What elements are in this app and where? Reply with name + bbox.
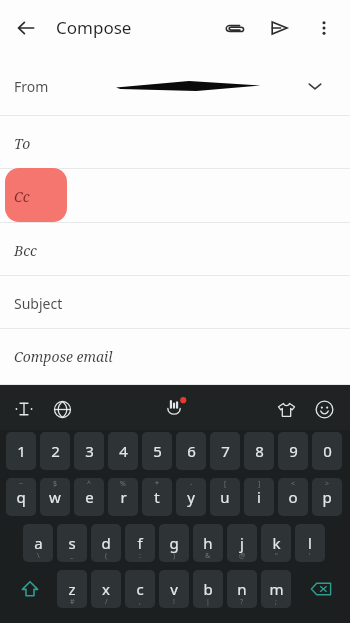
button[interactable]: Compose email (0, 328, 350, 382)
staticText: / (105, 597, 108, 607)
staticText: f (137, 533, 143, 553)
staticText: 4 (119, 441, 128, 461)
staticText: q (16, 487, 26, 507)
button[interactable]: r (108, 478, 138, 516)
staticText: d (101, 533, 111, 553)
button[interactable]: Attach file (218, 12, 250, 44)
button[interactable]: e (74, 478, 104, 516)
button[interactable]: Send (263, 12, 295, 44)
staticText: " (275, 551, 278, 561)
button[interactable]: Voice input (160, 395, 188, 423)
staticText: _ (70, 551, 74, 561)
button[interactable]: t (142, 478, 172, 516)
button[interactable]: q (6, 478, 36, 516)
staticText: 1 (17, 441, 26, 461)
staticText: Bcc (14, 241, 37, 260)
staticText: ) (173, 551, 176, 561)
button[interactable]: c (125, 570, 155, 608)
staticText: x (102, 579, 110, 599)
button[interactable]: Back (10, 12, 42, 44)
button[interactable]: x (91, 570, 121, 608)
staticText: r (120, 487, 127, 507)
staticText: ~ (19, 479, 24, 489)
button[interactable]: u (210, 478, 240, 516)
staticText: [ (224, 479, 227, 489)
staticText: h (203, 533, 213, 553)
button[interactable]: p (312, 478, 342, 516)
staticText: # (70, 597, 75, 607)
staticText: j (240, 533, 244, 553)
button[interactable]: i (244, 478, 274, 516)
button[interactable]: b (193, 570, 223, 608)
button[interactable]: From (0, 55, 350, 115)
staticText: % (120, 479, 126, 489)
staticText: Cc (14, 187, 30, 206)
staticText: ? (240, 597, 244, 607)
staticText: > (325, 479, 330, 489)
button[interactable]: Stickers (272, 395, 300, 423)
staticText: a (34, 533, 43, 553)
staticText: & (205, 551, 211, 561)
staticText: 8 (255, 441, 264, 461)
button[interactable]: To (0, 115, 350, 169)
button[interactable]: w (40, 478, 70, 516)
staticText: y (187, 487, 195, 507)
button[interactable]: f (125, 524, 155, 562)
button[interactable]: d (91, 524, 121, 562)
button[interactable]: Cc (0, 168, 350, 222)
button[interactable]: 7 (210, 432, 240, 470)
staticText: * (155, 479, 159, 489)
button[interactable]: Subject (0, 275, 350, 329)
button[interactable]: Backspace (297, 570, 344, 608)
button[interactable]: 0 (312, 432, 342, 470)
button[interactable]: n (227, 570, 257, 608)
button[interactable]: m (261, 570, 291, 608)
button[interactable]: o (278, 478, 308, 516)
staticText: 5 (153, 441, 162, 461)
button[interactable]: l (295, 524, 325, 562)
staticText: ; (275, 597, 277, 607)
staticText: 7 (221, 441, 230, 461)
button[interactable]: 8 (244, 432, 274, 470)
staticText: 0 (323, 441, 332, 461)
button[interactable]: Text editing (10, 395, 38, 423)
button[interactable]: j (227, 524, 257, 562)
staticText: n (237, 579, 247, 599)
staticText: o (288, 487, 298, 507)
button[interactable]: 4 (108, 432, 138, 470)
button[interactable]: s (57, 524, 87, 562)
staticText: c (136, 579, 144, 599)
staticText: z (68, 579, 76, 599)
staticText: g (169, 533, 179, 553)
staticText: s (68, 533, 76, 553)
staticText: | (206, 597, 210, 607)
button[interactable]: a (23, 524, 53, 562)
button[interactable]: z (57, 570, 87, 608)
staticText: ( (105, 551, 108, 561)
button[interactable]: k (261, 524, 291, 562)
staticText: u (220, 487, 230, 507)
button[interactable]: h (193, 524, 223, 562)
staticText: l (308, 533, 312, 553)
staticText: w (49, 487, 61, 507)
staticText: m (269, 579, 284, 599)
button[interactable]: 2 (40, 432, 70, 470)
button[interactable]: Change language (48, 395, 76, 423)
staticText: p (322, 487, 332, 507)
button[interactable]: Shift (6, 570, 53, 608)
button[interactable]: v (159, 570, 189, 608)
button[interactable]: 1 (6, 432, 36, 470)
button[interactable]: 9 (278, 432, 308, 470)
button[interactable]: More options (308, 12, 340, 44)
button[interactable]: y (176, 478, 206, 516)
button[interactable]: Bcc (0, 222, 350, 276)
button[interactable]: g (159, 524, 189, 562)
staticText: ] (258, 479, 261, 489)
staticText: ^ (87, 479, 92, 489)
button[interactable]: Expand recipients (302, 73, 328, 99)
staticText: - (190, 479, 193, 489)
button[interactable]: 3 (74, 432, 104, 470)
button[interactable]: 5 (142, 432, 172, 470)
button[interactable]: 6 (176, 432, 206, 470)
button[interactable]: Emoji (310, 395, 338, 423)
